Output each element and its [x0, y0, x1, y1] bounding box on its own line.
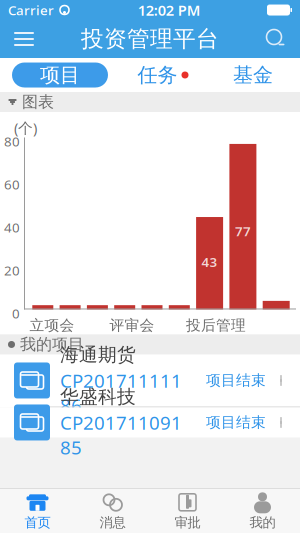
staticText: 60 [4, 175, 20, 193]
staticText: 80 [4, 132, 20, 150]
button[interactable]: 海通期货 [0, 354, 300, 407]
staticText: 华盛科技 [60, 385, 136, 408]
staticText: 项目结束 [206, 413, 266, 431]
staticText: 任务 [137, 63, 177, 87]
staticText: 项目结束 [206, 371, 266, 389]
button[interactable]: 审批 [150, 489, 225, 533]
button[interactable]: 项目 [12, 62, 108, 87]
button[interactable]: 我的 [225, 489, 300, 533]
staticText: (个) [14, 118, 37, 137]
button[interactable]: 基金 [218, 62, 288, 87]
button[interactable]: 任务 [123, 62, 203, 87]
button[interactable]: Menu [2, 21, 46, 57]
staticText: 项目 [40, 63, 80, 87]
staticText: 40 [4, 218, 20, 236]
staticText: 12:02 PM [138, 0, 201, 20]
staticText: 消息 [99, 514, 125, 531]
staticText: 我的项目 [20, 335, 84, 354]
staticText: CP20171109185 [60, 410, 182, 460]
staticText: 评审会 [109, 316, 154, 334]
staticText: 海通期货 [60, 343, 136, 366]
staticText: 图表 [22, 92, 54, 112]
staticText: 投资管理平台 [81, 25, 219, 53]
button[interactable]: Search [254, 21, 298, 57]
staticText: 基金 [233, 63, 273, 87]
staticText: 我的 [249, 514, 275, 531]
staticText: CP20171111186 [60, 368, 182, 418]
staticText: 审批 [174, 514, 200, 531]
staticText: 77 [235, 222, 251, 240]
staticText: 0 [12, 304, 20, 322]
button[interactable]: 华盛科技 [0, 407, 300, 437]
button[interactable]: 首页 [0, 489, 75, 533]
staticText: 43 [202, 253, 218, 271]
staticText: 20 [4, 261, 20, 279]
button[interactable]: 消息 [75, 489, 150, 533]
staticText: Carrier [8, 1, 54, 19]
staticText: 投后管理 [186, 316, 246, 334]
staticText: 首页 [24, 514, 50, 531]
staticText: 立项会 [29, 316, 74, 334]
